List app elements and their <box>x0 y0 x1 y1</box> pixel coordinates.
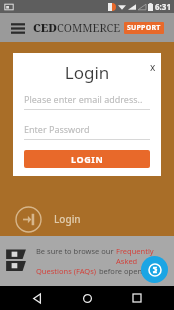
button[interactable]: Open navigation menu <box>7 17 29 39</box>
button[interactable]: CED <box>33 20 164 35</box>
staticText: Enter Password <box>24 123 90 135</box>
button[interactable]: Open A New Ticket <box>0 46 174 86</box>
button[interactable]: Close <box>145 59 161 75</box>
staticText: COMMERCE <box>57 20 121 35</box>
button[interactable]: Chat on Skype <box>141 256 168 283</box>
staticText: Be sure to browse our <box>36 246 116 256</box>
button[interactable]: Please enter email address.. <box>24 93 150 110</box>
staticText: 6:31 <box>155 1 171 12</box>
staticText: Open A New Ticket <box>54 59 145 73</box>
button[interactable]: Home <box>74 286 100 310</box>
button[interactable]: Back <box>24 286 50 310</box>
button[interactable]: Login <box>0 202 174 236</box>
button[interactable]: Questions (FAQs) <box>36 266 97 276</box>
staticText: SUPPORT <box>127 23 161 33</box>
staticText: CED <box>33 20 57 35</box>
button[interactable]: Frequently Asked <box>116 246 170 266</box>
staticText: x <box>150 60 156 74</box>
button[interactable]: LOGIN <box>24 150 150 168</box>
button[interactable]: Enter Password <box>24 123 150 140</box>
staticText: Login <box>13 61 161 84</box>
staticText: before opening a ... <box>97 266 168 276</box>
staticText: Please enter email address.. <box>24 93 143 105</box>
staticText: LOGIN <box>71 153 104 165</box>
staticText: Login <box>54 212 81 226</box>
button[interactable]: Recent apps <box>124 286 150 310</box>
